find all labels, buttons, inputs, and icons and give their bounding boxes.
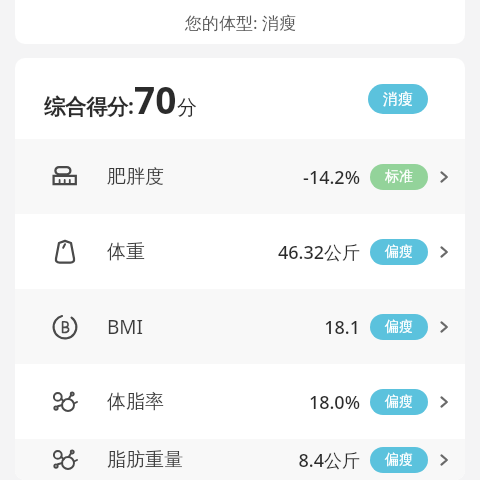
button[interactable]: 综合得分: <box>15 58 465 139</box>
button[interactable]: BMI <box>15 289 465 364</box>
staticText: 分 <box>177 95 197 120</box>
button[interactable]: 肥胖度 <box>15 139 465 214</box>
staticText: 偏瘦 <box>385 318 413 336</box>
staticText: 18.1 <box>324 315 360 340</box>
other: Details <box>436 394 452 410</box>
staticText: 标准 <box>385 168 413 186</box>
staticText: 18.0% <box>308 390 360 415</box>
staticText: 您的体型: 消瘦 <box>185 11 296 34</box>
other: Details <box>436 244 452 260</box>
button[interactable]: 您的体型: 消瘦 <box>15 0 465 44</box>
staticText: 体脂率 <box>107 390 164 414</box>
staticText: -14.2% <box>303 165 360 190</box>
staticText: 8.4公斤 <box>298 448 360 473</box>
staticText: 偏瘦 <box>385 243 413 261</box>
staticText: 体重 <box>107 240 145 264</box>
other: Details <box>436 452 452 468</box>
button[interactable]: 脂肪重量 <box>15 439 465 480</box>
staticText: 46.32公斤 <box>277 240 360 265</box>
other: Details <box>436 169 452 185</box>
staticText: 消瘦 <box>383 90 413 109</box>
staticText: 偏瘦 <box>385 393 413 411</box>
button[interactable]: 体重 <box>15 214 465 289</box>
staticText: 70 <box>134 74 177 124</box>
staticText: 肥胖度 <box>107 165 164 189</box>
staticText: BMI <box>107 314 144 340</box>
button[interactable]: 体脂率 <box>15 364 465 439</box>
staticText: 综合得分: <box>44 92 134 121</box>
staticText: 偏瘦 <box>385 451 413 469</box>
staticText: 脂肪重量 <box>107 448 183 472</box>
other: Details <box>436 319 452 335</box>
